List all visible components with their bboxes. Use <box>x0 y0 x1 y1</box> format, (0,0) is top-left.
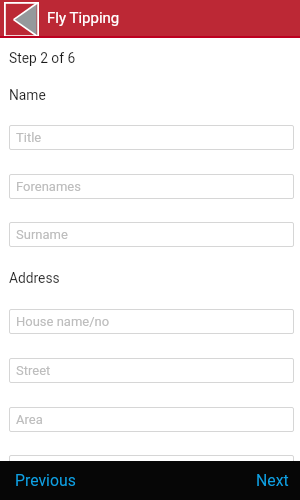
staticText: Name <box>9 87 46 103</box>
staticText: Title <box>16 130 42 145</box>
button[interactable] <box>9 455 294 480</box>
button[interactable]: Previous <box>0 463 84 498</box>
staticText: House name/no <box>16 314 110 329</box>
staticText: Surname <box>16 227 68 242</box>
button[interactable]: Forenames <box>9 174 294 199</box>
button[interactable]: Surname <box>9 222 294 247</box>
button[interactable]: House name/no <box>9 309 294 334</box>
staticText: Area <box>16 412 43 427</box>
staticText: Previous <box>15 471 76 490</box>
staticText: Forenames <box>16 179 81 194</box>
staticText: Street <box>16 363 51 378</box>
button[interactable]: Back <box>4 2 39 37</box>
staticText: Next <box>256 471 289 490</box>
button[interactable]: Street <box>9 358 294 383</box>
staticText: Fly Tipping <box>47 9 120 27</box>
staticText: Address <box>9 270 60 286</box>
staticText: Step 2 of 6 <box>9 50 76 66</box>
button[interactable]: Next <box>248 463 300 498</box>
button[interactable]: Title <box>9 125 294 150</box>
button[interactable]: Area <box>9 407 294 432</box>
